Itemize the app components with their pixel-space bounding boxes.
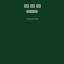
button[interactable]: Previous <box>24 4 29 8</box>
button[interactable]: Next <box>36 4 41 8</box>
button[interactable]: Primary action <box>26 10 38 13</box>
button[interactable]: Play <box>30 4 35 8</box>
